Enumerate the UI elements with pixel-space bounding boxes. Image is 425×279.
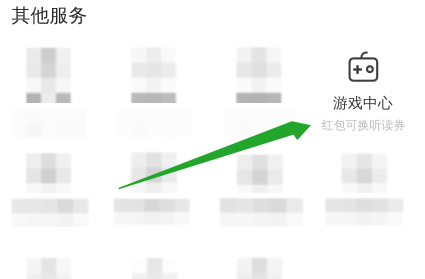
staticText: 红包可换听读券 [321, 118, 405, 133]
button[interactable]: 游戏中心 [301, 45, 422, 143]
staticText: 其他服务 [11, 4, 87, 27]
staticText: 游戏中心 [333, 94, 393, 112]
